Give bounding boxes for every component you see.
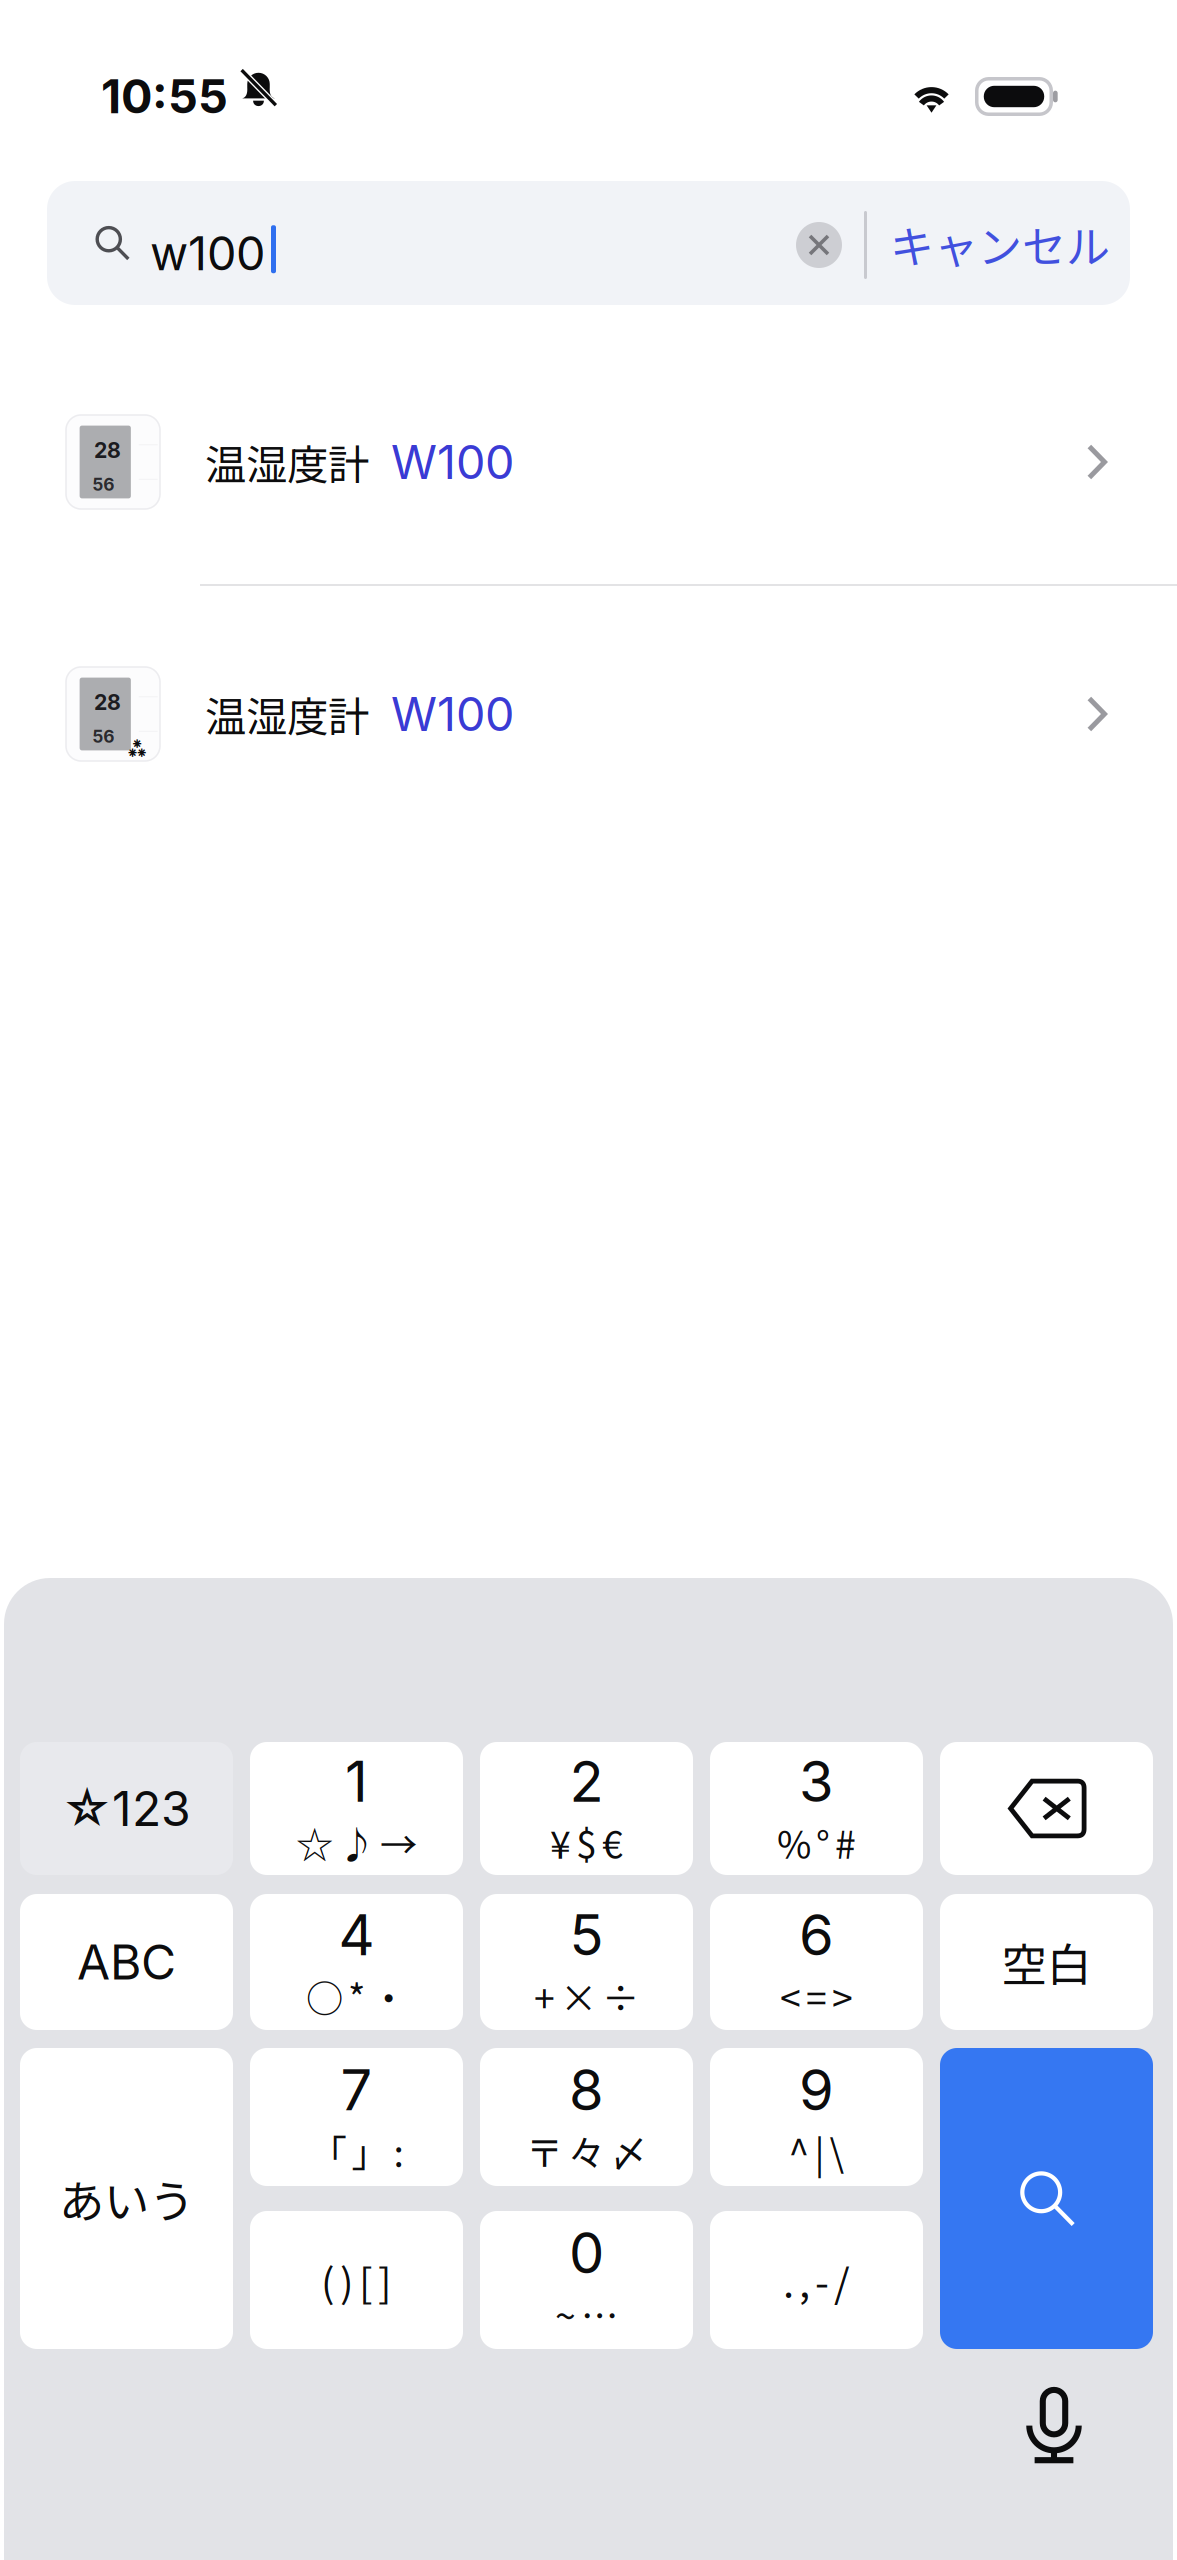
- staticText: 1: [345, 1748, 368, 1815]
- button[interactable]: ☆123: [20, 1742, 233, 1875]
- staticText: 56: [92, 726, 114, 747]
- staticText: W100: [391, 686, 514, 742]
- staticText: 56: [92, 474, 114, 495]
- button[interactable]: あいう: [20, 2048, 233, 2349]
- staticText: ⁂: [127, 731, 148, 766]
- staticText: 温湿度計: [205, 432, 369, 492]
- button[interactable]: 7: [250, 2048, 463, 2186]
- button[interactable]: 6: [710, 1894, 923, 2030]
- button[interactable]: 8: [480, 2048, 693, 2186]
- staticText: 4: [338, 1901, 374, 1969]
- staticText: あいう: [59, 2166, 194, 2231]
- staticText: ¥$€: [550, 1815, 623, 1869]
- staticText: 2: [569, 1748, 603, 1815]
- button[interactable]: 9: [710, 2048, 923, 2186]
- staticText: 空白: [1001, 1929, 1091, 1995]
- button[interactable]: .,-/: [710, 2211, 923, 2349]
- staticText: 〒々〆: [526, 2124, 647, 2178]
- staticText: <=>: [780, 1969, 853, 2023]
- staticText: ○*・: [306, 1969, 407, 2023]
- staticText: ABC: [77, 1933, 176, 1991]
- staticText: 3: [799, 1748, 834, 1815]
- staticText: ☆123: [62, 1779, 191, 1838]
- button[interactable]: 28: [0, 666, 1177, 762]
- staticText: 28: [94, 437, 121, 463]
- staticText: ☆♪→: [296, 1815, 417, 1869]
- staticText: ()[]: [321, 2251, 392, 2309]
- button[interactable]: 28: [0, 414, 1177, 510]
- staticText: 6: [799, 1901, 834, 1969]
- staticText: 9: [799, 2056, 834, 2124]
- button[interactable]: Clear text: [796, 222, 842, 268]
- staticText: 「」:: [309, 2124, 403, 2178]
- staticText: 0: [569, 2219, 604, 2287]
- button[interactable]: 3: [710, 1742, 923, 1875]
- staticText: 28: [94, 689, 121, 715]
- staticText: キャンセル: [890, 212, 1110, 276]
- button[interactable]: Dictation: [1016, 2388, 1092, 2464]
- staticText: 7: [340, 2056, 372, 2124]
- staticText: 温湿度計: [205, 684, 369, 744]
- staticText: ^|\: [788, 2124, 844, 2178]
- staticText: .,-/: [783, 2251, 850, 2309]
- button[interactable]: ABC: [20, 1894, 233, 2030]
- staticText: W100: [391, 434, 514, 490]
- staticText: 10:55: [101, 68, 228, 124]
- button[interactable]: 1: [250, 1742, 463, 1875]
- staticText: %°#: [777, 1815, 856, 1869]
- button[interactable]: Delete: [940, 1742, 1153, 1875]
- button[interactable]: 0: [480, 2211, 693, 2349]
- button[interactable]: 4: [250, 1894, 463, 2030]
- staticText: +×÷: [534, 1969, 639, 2023]
- staticText: 8: [569, 2056, 604, 2124]
- staticText: w100: [150, 225, 265, 281]
- button[interactable]: キャンセル: [890, 206, 1130, 282]
- button[interactable]: 5: [480, 1894, 693, 2030]
- staticText: ~…: [555, 2287, 618, 2341]
- button[interactable]: 空白: [940, 1894, 1153, 2030]
- staticText: 5: [569, 1901, 603, 1969]
- button[interactable]: ()[]: [250, 2211, 463, 2349]
- button[interactable]: 2: [480, 1742, 693, 1875]
- button[interactable]: Search: [940, 2048, 1153, 2349]
